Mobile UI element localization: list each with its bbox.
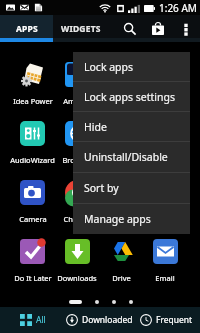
button[interactable]: Amazon	[55, 62, 99, 121]
staticText: Sort by	[84, 181, 119, 195]
button[interactable]	[143, 62, 187, 121]
button[interactable]: Email	[143, 239, 187, 296]
button[interactable]: Downloads	[55, 239, 99, 296]
staticText: All	[36, 314, 46, 326]
button[interactable]: Lock apps	[73, 52, 190, 81]
staticText: Email	[155, 273, 175, 283]
button[interactable]	[99, 180, 143, 239]
staticText: 1:26 AM	[159, 1, 197, 15]
staticText: AudioWizard	[10, 155, 55, 165]
button[interactable]: Drive	[99, 239, 143, 296]
button[interactable]: Camera	[10, 180, 55, 239]
button[interactable]: WIDGETS	[53, 15, 108, 42]
staticText: Do It Later	[14, 273, 52, 283]
staticText: Lock apps	[84, 60, 134, 74]
staticText: Hide	[84, 120, 107, 134]
staticText: Browser	[62, 155, 92, 165]
staticText: Frequent	[156, 314, 193, 326]
staticText: Uninstall/Disable	[84, 150, 168, 164]
staticText: Lock apps settings	[84, 90, 176, 104]
staticText: Amazon	[63, 96, 92, 106]
staticText: Drive	[112, 273, 131, 283]
button[interactable]: Do It Later	[10, 239, 55, 296]
button[interactable]: Uninstall/Disable	[73, 142, 190, 172]
staticText: APPS	[16, 23, 38, 35]
button[interactable]: All	[0, 307, 66, 333]
button[interactable]: Browser	[55, 121, 99, 180]
staticText: Downloads	[57, 273, 97, 283]
button[interactable]: APPS	[0, 15, 53, 42]
button[interactable]	[143, 180, 187, 239]
button[interactable]: Manage apps	[73, 204, 190, 234]
button[interactable]: Downloaded	[66, 307, 133, 333]
button[interactable]: Hide	[73, 112, 190, 141]
button[interactable]	[143, 121, 187, 180]
button[interactable]: Frequent	[133, 307, 200, 333]
staticText: Camera	[19, 214, 47, 224]
button[interactable]: AudioWizard	[10, 121, 55, 180]
staticText: WIDGETS	[61, 23, 101, 35]
button[interactable]: More options	[172, 15, 200, 42]
button[interactable]	[99, 62, 143, 121]
button[interactable]: Chrome	[55, 180, 99, 239]
button[interactable]	[99, 121, 143, 180]
button[interactable]: Sort by	[73, 173, 190, 203]
button[interactable]: Search	[116, 15, 143, 42]
staticText: Chrome	[63, 214, 92, 224]
staticText: Downloaded	[82, 314, 133, 326]
button[interactable]: Lock apps settings	[73, 82, 190, 111]
button[interactable]: Idea Power	[10, 62, 55, 121]
button[interactable]: Play Store	[143, 15, 172, 42]
staticText: Manage apps	[84, 212, 151, 226]
staticText: Idea Power	[13, 96, 53, 106]
